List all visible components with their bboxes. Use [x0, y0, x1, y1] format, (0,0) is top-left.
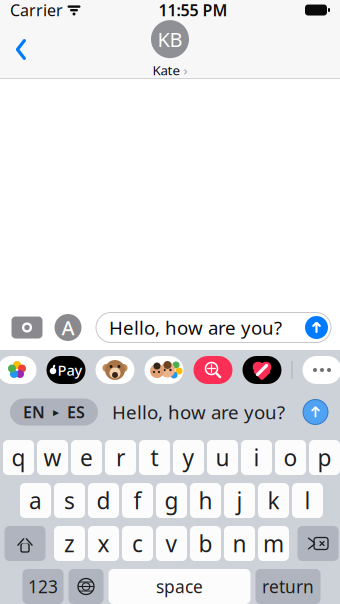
button[interactable]: 123 [22, 569, 63, 604]
staticText: t [150, 442, 158, 472]
button[interactable]: b [190, 526, 221, 561]
staticText: 123 [28, 575, 58, 598]
staticText: e [80, 442, 93, 472]
staticText: EN [23, 401, 45, 423]
staticText: x [97, 528, 109, 558]
staticText: a [29, 485, 42, 515]
staticText: z [64, 528, 75, 558]
button[interactable]: x [88, 526, 119, 561]
staticText: m [263, 528, 284, 558]
staticText: d [96, 485, 110, 515]
button[interactable]: k [258, 483, 289, 518]
button[interactable]: q [3, 440, 34, 475]
staticText: s [64, 485, 75, 515]
button[interactable]: t [139, 440, 170, 475]
button[interactable]: j [224, 483, 255, 518]
button[interactable]: i [241, 440, 272, 475]
staticText: Carrier [10, 0, 63, 21]
staticText: k [267, 485, 279, 515]
button[interactable]: a [20, 483, 51, 518]
button[interactable]: Shift [4, 526, 45, 561]
staticText: c [132, 528, 143, 558]
button[interactable]: Camera [9, 312, 45, 342]
button[interactable]: r [105, 440, 136, 475]
button[interactable]: Send translation [300, 396, 331, 427]
staticText: l [304, 485, 310, 515]
staticText: j [236, 485, 242, 515]
button[interactable]: Next keyboard [68, 569, 103, 604]
button[interactable]: p [309, 440, 340, 475]
staticText: KB [157, 26, 182, 52]
button[interactable]: c [122, 526, 153, 561]
button[interactable]: m [258, 526, 289, 561]
staticText: return [262, 575, 314, 598]
staticText: v [165, 528, 177, 558]
staticText: b [198, 528, 212, 558]
button[interactable]: Send [302, 313, 331, 342]
button[interactable]: KB [135, 18, 205, 81]
button[interactable]: Digital Touch [242, 356, 281, 384]
button[interactable]: EN [10, 398, 98, 425]
staticText: Kate [152, 61, 180, 79]
button[interactable]: Photos [0, 356, 36, 384]
staticText: A [61, 314, 74, 341]
button[interactable]: Apple Pay [46, 356, 85, 384]
button[interactable]: n [224, 526, 255, 561]
button[interactable]: f [122, 483, 153, 518]
button[interactable]: v [156, 526, 187, 561]
button[interactable]: space [108, 569, 250, 604]
staticText: Hello, how are you? [112, 400, 285, 424]
staticText: g [164, 485, 178, 515]
button[interactable]: z [54, 526, 85, 561]
button[interactable]: l [292, 483, 323, 518]
button[interactable]: return [255, 569, 320, 604]
staticText: h [198, 485, 212, 515]
button[interactable]: w [37, 440, 68, 475]
staticText: u [215, 442, 229, 472]
staticText: p [317, 442, 331, 472]
staticText: w [43, 442, 61, 472]
button[interactable]: y [173, 440, 204, 475]
button[interactable]: h [190, 483, 221, 518]
staticText: ES [67, 401, 85, 423]
button[interactable]: Images [193, 356, 232, 384]
button[interactable]: s [54, 483, 85, 518]
staticText: i [253, 442, 259, 472]
staticText: f [133, 485, 141, 515]
staticText: r [116, 442, 125, 472]
button[interactable]: Back [4, 26, 38, 72]
staticText: 11:55 PM [158, 0, 227, 21]
button[interactable]: o [275, 440, 306, 475]
staticText: o [283, 442, 297, 472]
staticText: y [182, 442, 194, 472]
button[interactable]: u [207, 440, 238, 475]
button[interactable]: e [71, 440, 102, 475]
button[interactable]: App Store [51, 312, 85, 342]
button[interactable]: Delete [297, 526, 338, 561]
button[interactable]: g [156, 483, 187, 518]
button[interactable]: d [88, 483, 119, 518]
staticText: q [11, 442, 25, 472]
button[interactable]: Memoji Stickers [144, 356, 183, 384]
button[interactable]: More [302, 356, 340, 384]
staticText: Hello, how are you? [109, 315, 282, 340]
button[interactable]: Animoji [95, 356, 134, 384]
staticText: Pay [57, 360, 82, 380]
staticText: space [156, 575, 203, 598]
staticText: ▸ [53, 405, 59, 419]
staticText: n [232, 528, 246, 558]
staticText: › [183, 61, 187, 79]
